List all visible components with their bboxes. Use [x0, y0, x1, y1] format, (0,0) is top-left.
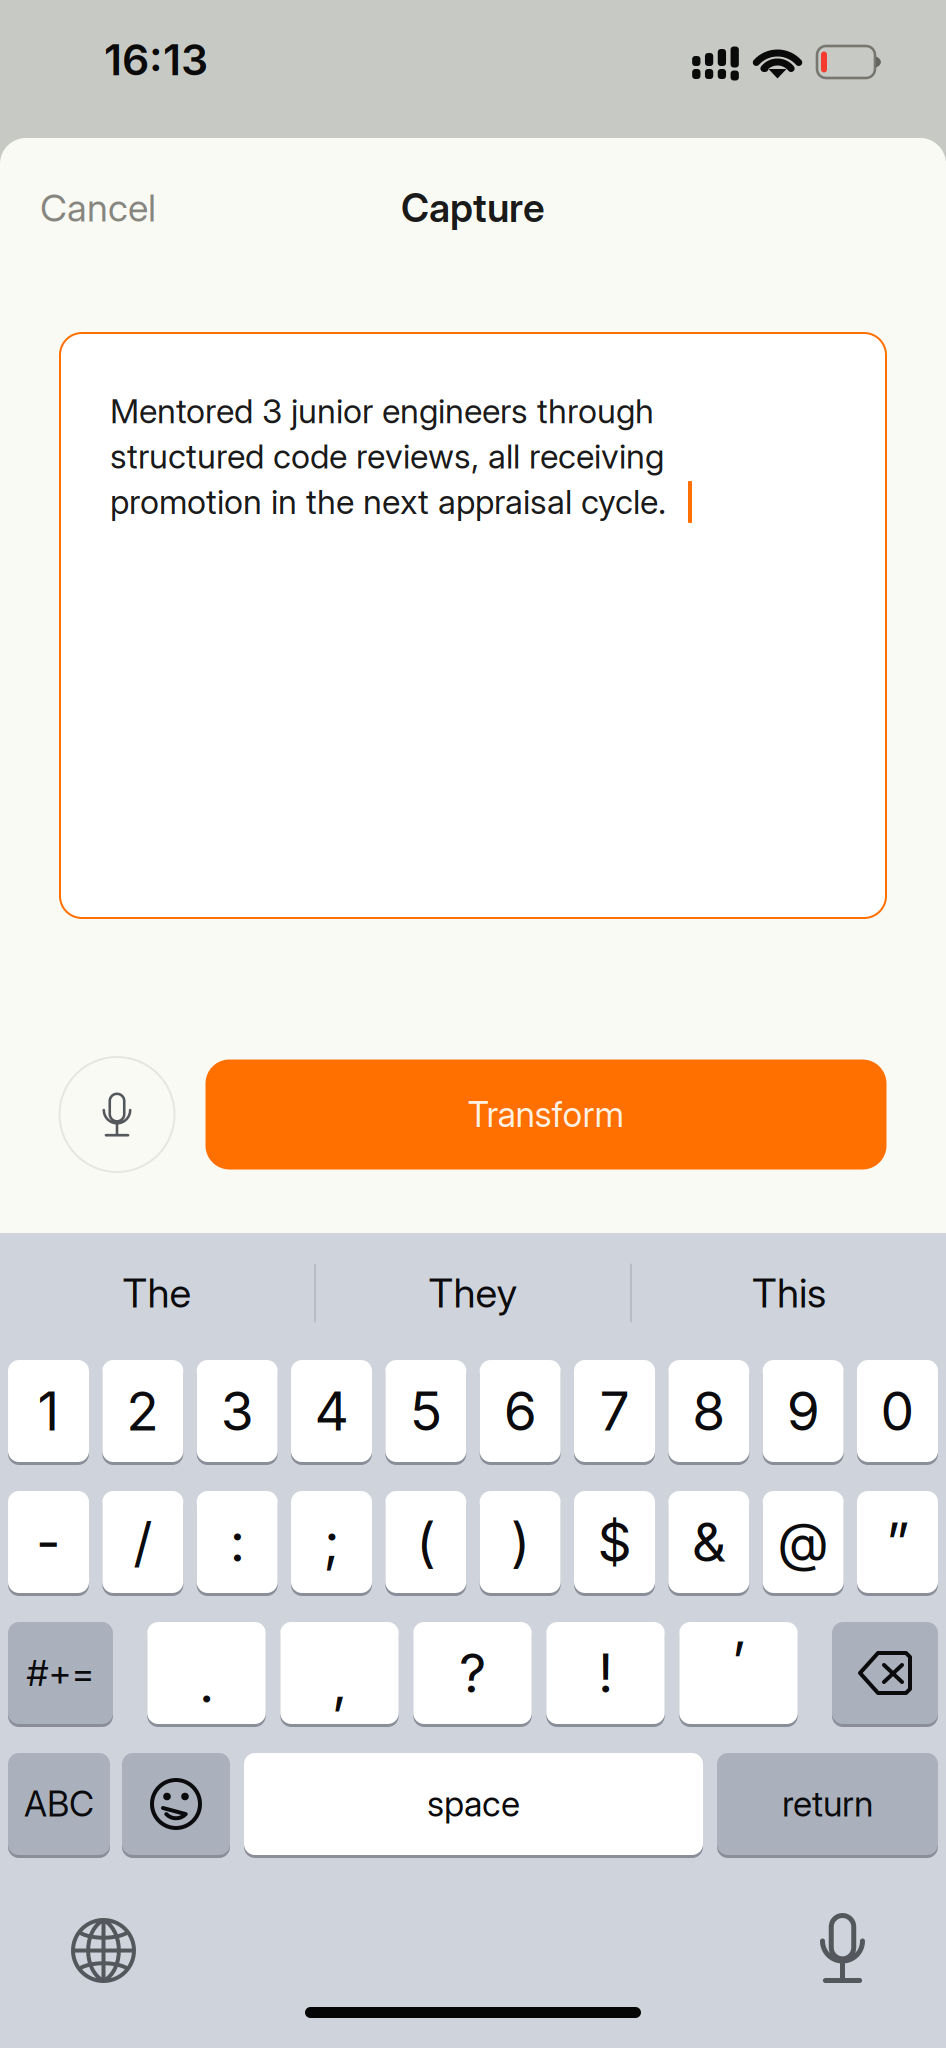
staticText: ( — [416, 1510, 435, 1574]
button[interactable]: 9 — [763, 1357, 844, 1465]
staticText: $ — [597, 1510, 631, 1574]
button[interactable]: Capture — [323, 178, 623, 238]
button[interactable]: @ — [763, 1488, 844, 1596]
staticText: & — [692, 1510, 726, 1574]
button[interactable]: Cancel — [40, 178, 180, 238]
staticText: ) — [511, 1510, 530, 1574]
button[interactable]: ? — [413, 1619, 532, 1727]
button[interactable]: Dictate — [59, 1057, 174, 1172]
button[interactable]: : — [197, 1488, 278, 1596]
staticText: Transform — [467, 1093, 624, 1135]
button[interactable]: 5 — [385, 1357, 466, 1465]
staticText: , — [332, 1651, 347, 1715]
staticText: ! — [598, 1641, 613, 1705]
staticText: 16:13 — [104, 34, 208, 86]
button[interactable]: 4 — [291, 1357, 372, 1465]
staticText: / — [133, 1510, 152, 1574]
button[interactable]: & — [668, 1488, 749, 1596]
button[interactable] — [122, 1750, 230, 1858]
button[interactable]: $ — [574, 1488, 655, 1596]
staticText: 0 — [880, 1379, 914, 1443]
staticText: 6 — [504, 1379, 537, 1443]
button[interactable]: ” — [857, 1488, 938, 1596]
staticText: . — [199, 1651, 214, 1715]
staticText: 2 — [126, 1379, 159, 1443]
staticText: Mentored 3 junior engineers through stru… — [110, 391, 666, 522]
staticText: Capture — [401, 185, 545, 231]
button[interactable]: / — [102, 1488, 183, 1596]
button[interactable]: Transform — [205, 1059, 886, 1169]
button[interactable]: ; — [291, 1488, 372, 1596]
button[interactable]: 2 — [102, 1357, 183, 1465]
staticText: ABC — [24, 1783, 94, 1825]
staticText: : — [230, 1510, 245, 1574]
staticText: 9 — [787, 1379, 820, 1443]
staticText: The — [122, 1269, 191, 1317]
button[interactable]: 7 — [574, 1357, 655, 1465]
button[interactable]: . — [147, 1619, 266, 1727]
button[interactable]: 8 — [668, 1357, 749, 1465]
staticText: This — [752, 1269, 826, 1317]
button[interactable]: ) — [480, 1488, 561, 1596]
button[interactable]: - — [8, 1488, 89, 1596]
button[interactable]: return — [717, 1750, 938, 1858]
button[interactable] — [832, 1619, 938, 1727]
button[interactable]: 3 — [197, 1357, 278, 1465]
button[interactable]: This — [632, 1233, 946, 1353]
staticText: ? — [459, 1641, 486, 1705]
button[interactable]: Next keyboard — [71, 1918, 136, 1983]
staticText: - — [36, 1510, 61, 1574]
staticText: ” — [886, 1510, 909, 1574]
staticText: 3 — [221, 1379, 254, 1443]
button[interactable]: 1 — [8, 1357, 89, 1465]
staticText: ; — [323, 1510, 339, 1574]
button[interactable]: They — [316, 1233, 630, 1353]
staticText: 5 — [410, 1379, 442, 1443]
staticText: #+= — [26, 1651, 94, 1695]
staticText: 8 — [692, 1379, 725, 1443]
button[interactable]: ! — [546, 1619, 665, 1727]
button[interactable]: 6 — [480, 1357, 561, 1465]
staticText: They — [428, 1269, 517, 1317]
button[interactable]: The — [0, 1233, 314, 1353]
button[interactable]: 0 — [857, 1357, 938, 1465]
button[interactable]: ’ — [679, 1619, 798, 1727]
staticText: 1 — [37, 1379, 59, 1443]
button[interactable]: , — [280, 1619, 399, 1727]
button[interactable]: Dictate — [820, 1913, 865, 1983]
staticText: @ — [777, 1510, 829, 1574]
button[interactable]: #+= — [8, 1619, 113, 1727]
staticText: return — [782, 1783, 873, 1825]
button[interactable]: ( — [385, 1488, 466, 1596]
button[interactable]: ABC — [8, 1750, 110, 1858]
staticText: space — [427, 1783, 520, 1825]
staticText: ’ — [731, 1629, 745, 1693]
button[interactable]: space — [244, 1750, 703, 1858]
staticText: 4 — [314, 1379, 348, 1443]
staticText: Cancel — [40, 185, 156, 231]
staticText: 7 — [599, 1379, 629, 1443]
